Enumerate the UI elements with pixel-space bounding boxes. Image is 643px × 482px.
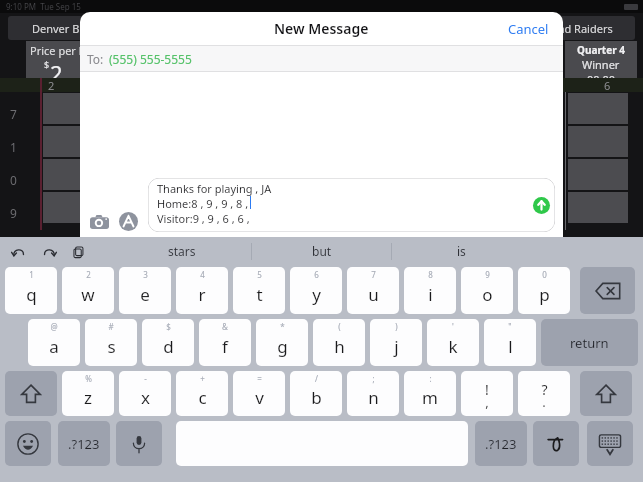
- button[interactable]: .?123: [58, 421, 110, 466]
- button[interactable]: stars: [112, 237, 251, 265]
- button[interactable]: ?: [518, 371, 570, 416]
- staticText: 7: [371, 269, 376, 280]
- staticText: 7: [10, 106, 17, 122]
- button[interactable]: #: [85, 319, 137, 366]
- staticText: 3: [143, 269, 148, 280]
- button[interactable]: 7: [347, 267, 399, 314]
- staticText: Denver Broncos: [32, 21, 115, 36]
- button[interactable]: To:: [80, 46, 563, 71]
- staticText: 1: [29, 269, 34, 280]
- staticText: t: [256, 283, 263, 306]
- button[interactable]: 5: [233, 267, 285, 314]
- button[interactable]: ): [370, 319, 422, 366]
- button[interactable]: Send: [533, 197, 550, 214]
- staticText: New Message: [274, 19, 369, 38]
- button[interactable]: 2: [62, 267, 114, 314]
- staticText: Cancel: [508, 20, 549, 38]
- staticText: g: [277, 335, 288, 358]
- staticText: v: [255, 386, 264, 409]
- staticText: (: [338, 321, 341, 332]
- button[interactable]: /: [290, 371, 342, 416]
- staticText: $: [166, 321, 171, 332]
- staticText: Thanks for playing , JA: [157, 181, 272, 196]
- staticText: Visitor:9 , 9 , 6 , 6 ,: [157, 211, 250, 226]
- button[interactable]: =: [233, 371, 285, 416]
- button[interactable]: Undo: [8, 241, 30, 263]
- button[interactable]: 4: [176, 267, 228, 314]
- staticText: .?123: [485, 435, 517, 453]
- staticText: q: [26, 283, 37, 306]
- staticText: Oakland Raiders: [528, 21, 613, 36]
- button[interactable]: Camera: [88, 210, 110, 232]
- staticText: 5: [257, 269, 262, 280]
- staticText: 6: [604, 78, 611, 93]
- staticText: ": [508, 321, 512, 332]
- button[interactable]: @: [28, 319, 80, 366]
- button[interactable]: Handwriting: [533, 421, 579, 466]
- staticText: !: [485, 380, 489, 399]
- button[interactable]: Emoji: [5, 421, 51, 466]
- button[interactable]: %: [62, 371, 114, 416]
- button[interactable]: :: [404, 371, 456, 416]
- staticText: ): [395, 321, 398, 332]
- button[interactable]: ;: [347, 371, 399, 416]
- button[interactable]: return: [541, 319, 638, 366]
- staticText: 2: [86, 269, 91, 280]
- button[interactable]: 8: [404, 267, 456, 314]
- button[interactable]: -: [119, 371, 171, 416]
- staticText: 9: [10, 205, 17, 221]
- staticText: m: [422, 386, 438, 409]
- staticText: e: [140, 283, 150, 306]
- button[interactable]: 1: [5, 267, 57, 314]
- staticText: ,: [485, 393, 489, 411]
- staticText: 0: [542, 269, 547, 280]
- staticText: .: [542, 393, 546, 411]
- button[interactable]: Hide keyboard: [587, 421, 633, 466]
- button[interactable]: 9: [461, 267, 513, 314]
- staticText: o: [482, 283, 493, 306]
- staticText: To:: [87, 51, 104, 67]
- button[interactable]: Dictation: [116, 421, 162, 466]
- button[interactable]: &: [199, 319, 251, 366]
- staticText: s: [107, 335, 116, 358]
- button[interactable]: is: [392, 237, 531, 265]
- button[interactable]: Redo: [38, 241, 60, 263]
- staticText: 9: [485, 269, 490, 280]
- button[interactable]: Backspace: [580, 267, 635, 314]
- button[interactable]: +: [176, 371, 228, 416]
- button[interactable]: Shift: [5, 371, 57, 416]
- button[interactable]: Paste: [68, 241, 90, 263]
- staticText: @: [50, 321, 58, 332]
- staticText: k: [448, 335, 458, 358]
- button[interactable]: Shift: [580, 371, 632, 416]
- button[interactable]: Apps: [117, 210, 139, 232]
- button[interactable]: .?123: [475, 421, 527, 466]
- button[interactable]: $: [142, 319, 194, 366]
- staticText: is: [457, 243, 466, 259]
- button[interactable]: !: [461, 371, 513, 416]
- button[interactable]: 3: [119, 267, 171, 314]
- staticText: 0: [10, 172, 17, 188]
- staticText: %: [85, 373, 92, 384]
- staticText: #: [108, 321, 114, 332]
- button[interactable]: Thanks for playing , JA: [148, 178, 555, 232]
- button[interactable]: Cancel: [504, 16, 553, 42]
- button[interactable]: 0: [518, 267, 570, 314]
- staticText: Price per b: [30, 43, 86, 58]
- staticText: b: [311, 386, 322, 409]
- staticText: stars: [168, 243, 196, 259]
- button[interactable]: ': [427, 319, 479, 366]
- staticText: r: [198, 283, 206, 306]
- staticText: ;: [372, 373, 375, 384]
- staticText: x: [141, 386, 150, 409]
- staticText: ?: [541, 380, 548, 399]
- button[interactable]: 6: [290, 267, 342, 314]
- button[interactable]: (: [313, 319, 365, 366]
- staticText: 8: [428, 269, 433, 280]
- staticText: *: [280, 321, 285, 332]
- button[interactable]: ": [484, 319, 536, 366]
- button[interactable]: *: [256, 319, 308, 366]
- button[interactable]: but: [252, 237, 391, 265]
- staticText: +: [200, 373, 205, 384]
